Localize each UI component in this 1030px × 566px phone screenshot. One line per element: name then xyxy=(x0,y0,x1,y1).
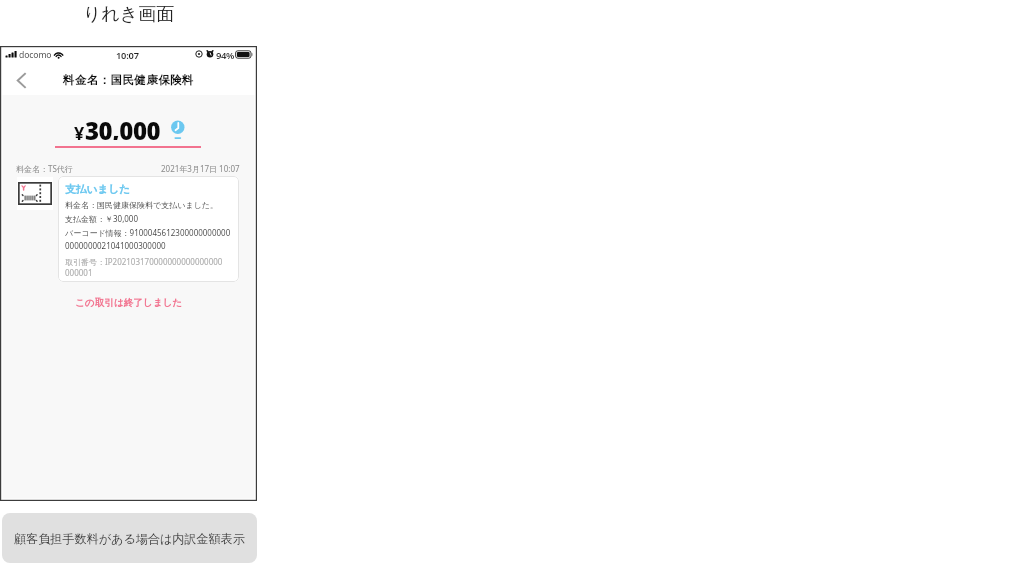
staticText: 000001 xyxy=(65,267,93,278)
staticText: 顧客負担手数料がある場合は内訳金額表示 xyxy=(14,531,245,546)
staticText: 0000000021041000300000 xyxy=(65,240,166,251)
staticText: docomo xyxy=(19,49,52,61)
staticText: この取引は終了しました xyxy=(75,297,183,309)
button[interactable]: Payment history xyxy=(169,118,187,142)
staticText: 取引番号：IP202103170000000000000000 xyxy=(65,256,223,267)
button[interactable]: 顧客負担手数料がある場合は内訳金額表示 xyxy=(2,513,257,563)
staticText: 支払金額：￥30,000 xyxy=(65,213,139,224)
staticText: りれき画面 xyxy=(83,3,175,26)
button[interactable]: Payment slip xyxy=(17,177,53,210)
staticText: 料金名：国民健康保険料 xyxy=(63,73,194,87)
staticText: 支払いました xyxy=(65,183,131,196)
staticText: ¥30,000 xyxy=(74,114,161,140)
staticText: 料金名：TS代行 xyxy=(16,163,73,174)
button[interactable]: 支払いました xyxy=(58,176,239,282)
staticText: 94% xyxy=(216,49,234,62)
staticText: バーコード情報：9100045612300000000000 xyxy=(65,227,231,238)
button[interactable]: Back xyxy=(9,68,33,92)
staticText: 料金名：国民健康保険料で支払いました。 xyxy=(65,200,218,210)
staticText: 2021年3月17日 10:07 xyxy=(161,163,240,174)
staticText: 10:07 xyxy=(116,49,139,62)
